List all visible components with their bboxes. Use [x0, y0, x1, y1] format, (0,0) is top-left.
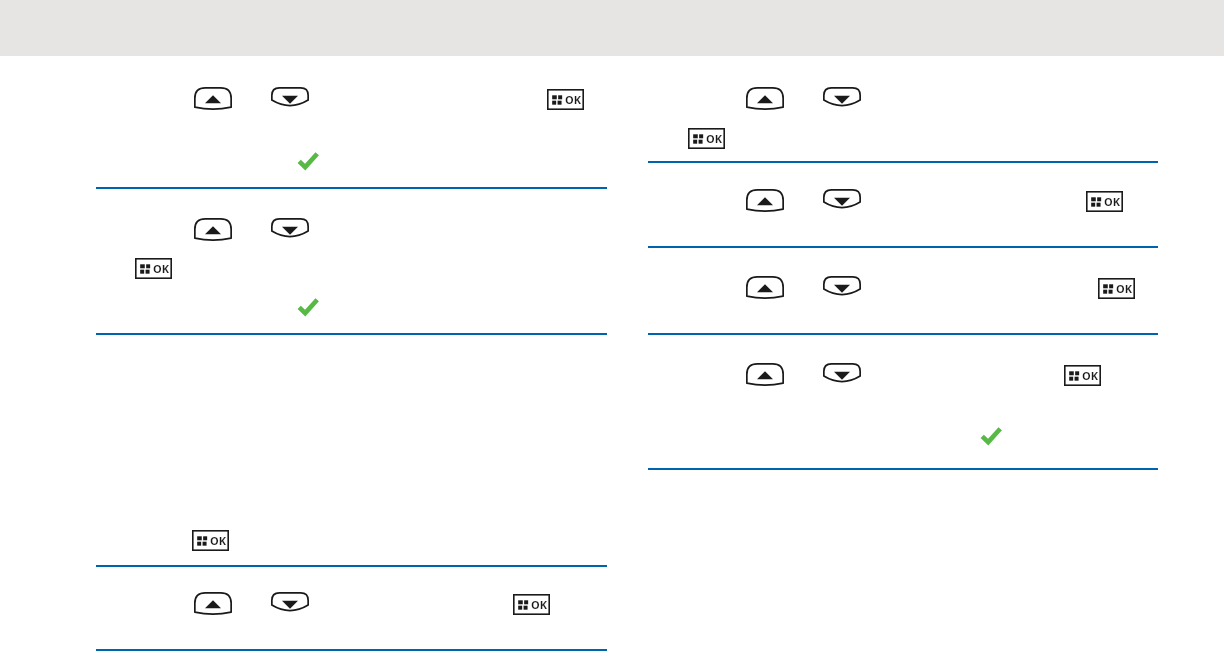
button[interactable]: OK / Menu [1064, 365, 1101, 386]
staticText: OK [565, 92, 582, 107]
button[interactable]: OK / Menu [192, 530, 229, 551]
button[interactable]: Scroll down [823, 276, 861, 301]
button[interactable]: Scroll up [746, 87, 784, 112]
button[interactable]: Scroll down [823, 189, 861, 214]
button[interactable]: Scroll down [271, 218, 309, 243]
button[interactable]: OK / Menu [135, 258, 172, 279]
staticText: OK [531, 597, 548, 612]
staticText: OK [1082, 368, 1099, 383]
button[interactable]: OK / Menu [1098, 278, 1135, 299]
button[interactable]: Scroll up [746, 363, 784, 388]
button[interactable]: Scroll up [194, 87, 232, 112]
staticText: OK [1116, 281, 1133, 296]
button[interactable]: Scroll down [823, 363, 861, 388]
button[interactable]: Scroll up [746, 189, 784, 214]
button[interactable]: Scroll up [746, 276, 784, 301]
staticText: OK [210, 533, 227, 548]
button[interactable]: OK / Menu [547, 89, 584, 110]
button[interactable]: OK / Menu [513, 594, 550, 615]
button[interactable]: Scroll down [823, 87, 861, 112]
button[interactable]: Scroll up [194, 592, 232, 617]
button[interactable]: Scroll down [271, 592, 309, 617]
staticText: OK [1104, 194, 1121, 209]
staticText: OK [153, 261, 170, 276]
button[interactable]: OK / Menu [688, 128, 725, 149]
button[interactable]: Scroll down [271, 87, 309, 112]
staticText: OK [706, 131, 723, 146]
button[interactable]: Scroll up [194, 218, 232, 243]
button[interactable]: OK / Menu [1086, 191, 1123, 212]
